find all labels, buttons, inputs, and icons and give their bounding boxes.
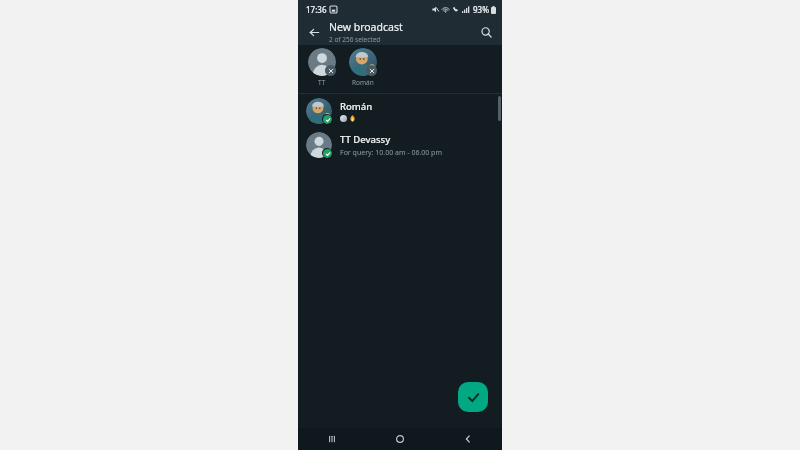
button[interactable]: Back: [434, 428, 502, 450]
button[interactable]: TT Devassy: [298, 128, 502, 162]
staticText: 2 of 256 selected: [329, 35, 381, 44]
button[interactable]: Román: [298, 94, 502, 128]
button[interactable]: Create broadcast: [458, 382, 488, 412]
staticText: For query: 10.00 am - 06.00 pm: [340, 148, 442, 158]
button[interactable]: Recents: [298, 428, 366, 450]
staticText: New broadcast: [329, 20, 403, 34]
button[interactable]: Back: [305, 23, 323, 41]
staticText: Román: [352, 78, 374, 87]
staticText: TT Devassy: [340, 133, 391, 146]
staticText: 93%: [473, 4, 489, 15]
button[interactable]: Román: [347, 48, 379, 87]
staticText: TT: [318, 78, 326, 87]
button[interactable]: TT: [306, 48, 338, 87]
button[interactable]: Home: [366, 428, 434, 450]
button[interactable]: Search: [477, 23, 495, 41]
staticText: Román: [340, 100, 373, 113]
staticText: 17:36: [306, 4, 327, 15]
